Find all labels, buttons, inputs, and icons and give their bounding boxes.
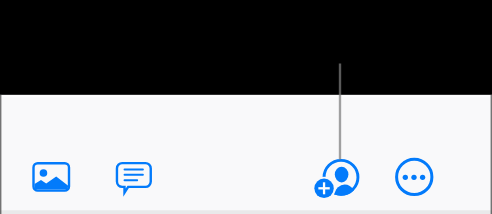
button[interactable]: Messages	[109, 152, 159, 202]
button[interactable]: More options	[389, 152, 439, 202]
button[interactable]: Photos	[26, 152, 76, 202]
button[interactable]: Add person	[317, 152, 367, 202]
